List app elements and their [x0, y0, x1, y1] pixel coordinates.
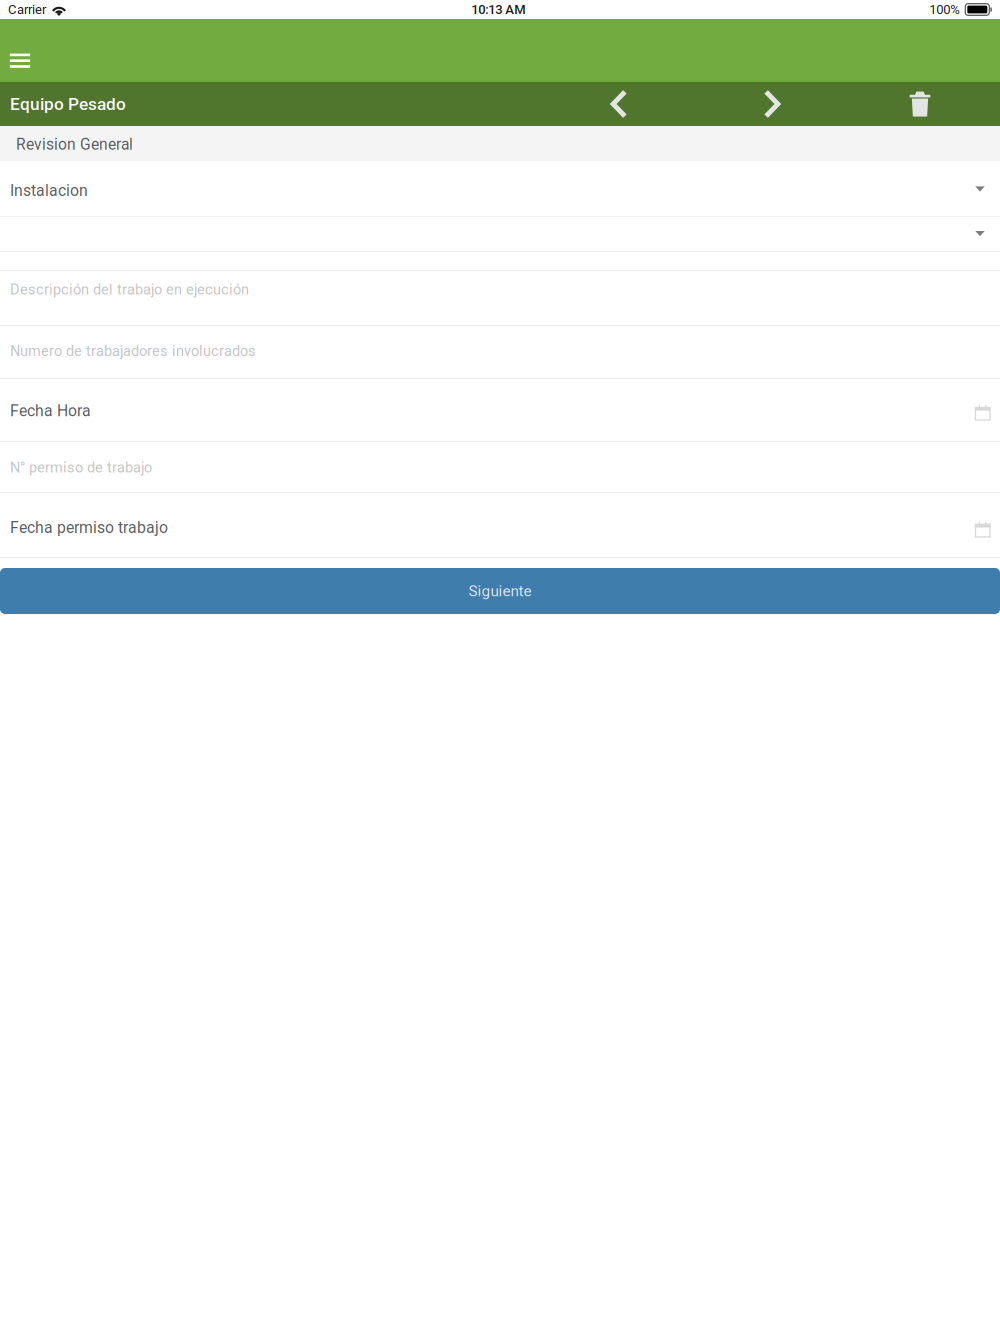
staticText: Equipo Pesado — [10, 94, 126, 114]
button[interactable] — [0, 217, 1000, 251]
button[interactable]: Fecha Hora — [0, 379, 1000, 441]
staticText: Carrier — [8, 2, 46, 17]
staticText: N° permiso de trabajo — [10, 459, 152, 476]
staticText: 100% — [929, 2, 960, 17]
staticText: 10:13 AM — [471, 2, 525, 17]
staticText: Fecha permiso trabajo — [10, 518, 168, 537]
button[interactable]: Previous record — [595, 82, 643, 126]
button[interactable]: Menu — [0, 19, 40, 82]
staticText: Descripción del trabajo en ejecución — [10, 281, 249, 298]
button[interactable]: Siguiente — [0, 568, 1000, 614]
button[interactable]: Descripción del trabajo en ejecución — [0, 271, 1000, 325]
button[interactable]: Fecha permiso trabajo — [0, 493, 1000, 557]
button[interactable]: Instalacion — [0, 161, 1000, 216]
button[interactable]: N° permiso de trabajo — [0, 442, 1000, 492]
staticText: Instalacion — [10, 181, 88, 200]
staticText: Revision General — [16, 135, 133, 153]
button[interactable]: Next record — [748, 82, 796, 126]
button[interactable]: Numero de trabajadores involucrados — [0, 326, 1000, 378]
staticText: Fecha Hora — [10, 402, 91, 420]
staticText: Siguiente — [468, 582, 531, 600]
button[interactable]: Delete — [896, 82, 944, 126]
staticText: Numero de trabajadores involucrados — [10, 343, 256, 360]
